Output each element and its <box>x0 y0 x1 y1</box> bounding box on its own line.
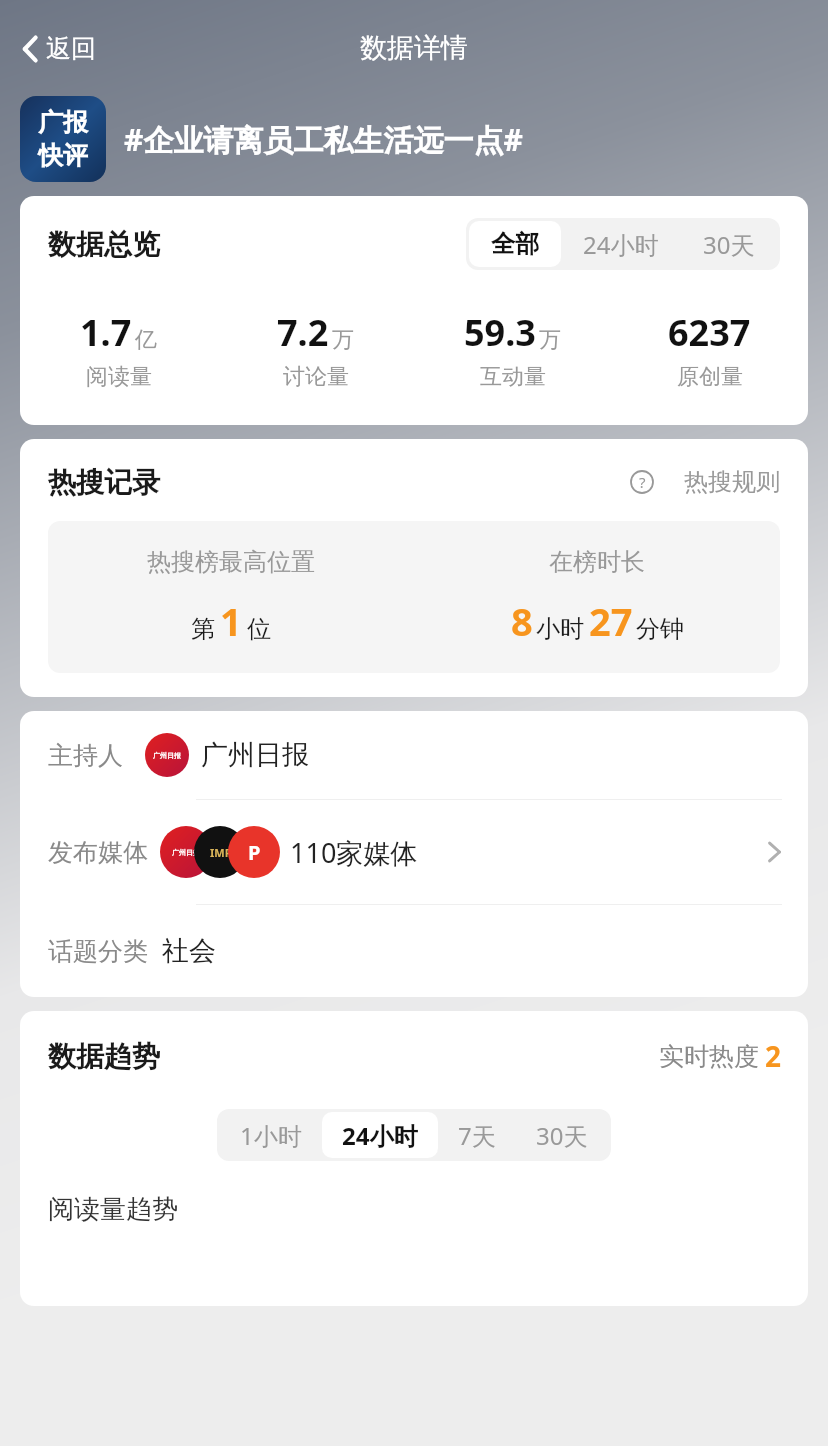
staticText: 阅读量 <box>86 363 152 391</box>
staticText: 7.2 <box>277 308 329 357</box>
staticText: 1.7 <box>80 308 132 357</box>
staticText: 分钟 <box>636 614 684 644</box>
staticText: 数据趋势 <box>48 1039 160 1074</box>
staticText: 返回 <box>46 33 96 64</box>
staticText: 24小时 <box>583 228 659 261</box>
staticText: 万 <box>332 326 354 354</box>
staticText: 快评 <box>38 140 88 171</box>
staticText: 24小时 <box>342 1119 418 1152</box>
button[interactable]: 发布媒体 <box>20 800 808 904</box>
staticText: 热搜记录 <box>48 465 160 500</box>
button[interactable]: 1小时 <box>220 1112 322 1158</box>
staticText: ? <box>639 472 646 492</box>
button[interactable]: 广报快评 头像 <box>20 96 106 182</box>
staticText: 万 <box>539 326 561 354</box>
staticText: 小时 <box>536 614 584 644</box>
staticText: 广州日报 <box>172 848 200 857</box>
button[interactable]: 1.7 <box>20 308 217 391</box>
staticText: 30天 <box>703 228 755 261</box>
staticText: 阅读量趋势 <box>48 1193 178 1226</box>
staticText: 7天 <box>458 1119 496 1152</box>
staticText: 话题分类 <box>48 936 148 967</box>
staticText: 在榜时长 <box>549 547 645 577</box>
button[interactable]: 话题分类 <box>20 905 808 997</box>
staticText: 位 <box>247 614 271 644</box>
button[interactable]: ? <box>626 463 784 501</box>
button[interactable]: 实时热度 <box>659 1037 782 1075</box>
staticText: IMF <box>210 845 231 860</box>
button[interactable]: 6237 <box>611 308 808 391</box>
button[interactable]: 主持人 <box>20 711 808 799</box>
staticText: 8 <box>511 595 533 647</box>
staticText: 发布媒体 <box>48 837 148 868</box>
staticText: P <box>248 839 261 866</box>
staticText: 59.3 <box>464 308 536 357</box>
other: 查看全部媒体 <box>766 838 784 866</box>
staticText: #企业请离员工私生活远一点# <box>124 119 523 160</box>
button[interactable]: 30天 <box>681 221 777 267</box>
staticText: 全部 <box>491 229 539 259</box>
staticText: 互动量 <box>480 363 546 391</box>
staticText: 数据总览 <box>48 227 160 262</box>
staticText: 广州日报 <box>153 751 181 760</box>
button[interactable]: 返回 <box>14 27 102 70</box>
staticText: 6237 <box>668 308 751 357</box>
staticText: 讨论量 <box>283 363 349 391</box>
button[interactable]: 30天 <box>516 1112 608 1158</box>
staticText: 广报 <box>38 107 88 138</box>
button[interactable]: 24小时 <box>561 221 681 267</box>
button[interactable]: 在榜时长 <box>414 547 780 647</box>
button[interactable]: 全部 <box>469 221 561 267</box>
staticText: 社会 <box>162 934 216 968</box>
staticText: 亿 <box>135 326 157 354</box>
staticText: 27 <box>589 595 633 647</box>
staticText: 数据详情 <box>360 31 468 65</box>
staticText: 2 <box>765 1037 782 1075</box>
staticText: 实时热度 <box>659 1041 759 1072</box>
staticText: 1 <box>220 595 242 647</box>
button[interactable]: 热搜榜最高位置 <box>48 547 414 647</box>
button[interactable]: 7.2 <box>217 308 414 391</box>
staticText: 30天 <box>536 1119 588 1152</box>
staticText: 广州日报 <box>201 738 309 772</box>
staticText: 原创量 <box>677 363 743 391</box>
staticText: 热搜规则 <box>684 467 780 497</box>
staticText: 主持人 <box>48 740 123 771</box>
button[interactable]: 7天 <box>438 1112 516 1158</box>
button[interactable]: 59.3 <box>414 308 611 391</box>
staticText: 第 <box>191 614 215 644</box>
staticText: 1小时 <box>240 1119 302 1152</box>
staticText: 热搜榜最高位置 <box>147 547 315 577</box>
button[interactable]: 24小时 <box>322 1112 438 1158</box>
staticText: 110家媒体 <box>290 834 418 871</box>
